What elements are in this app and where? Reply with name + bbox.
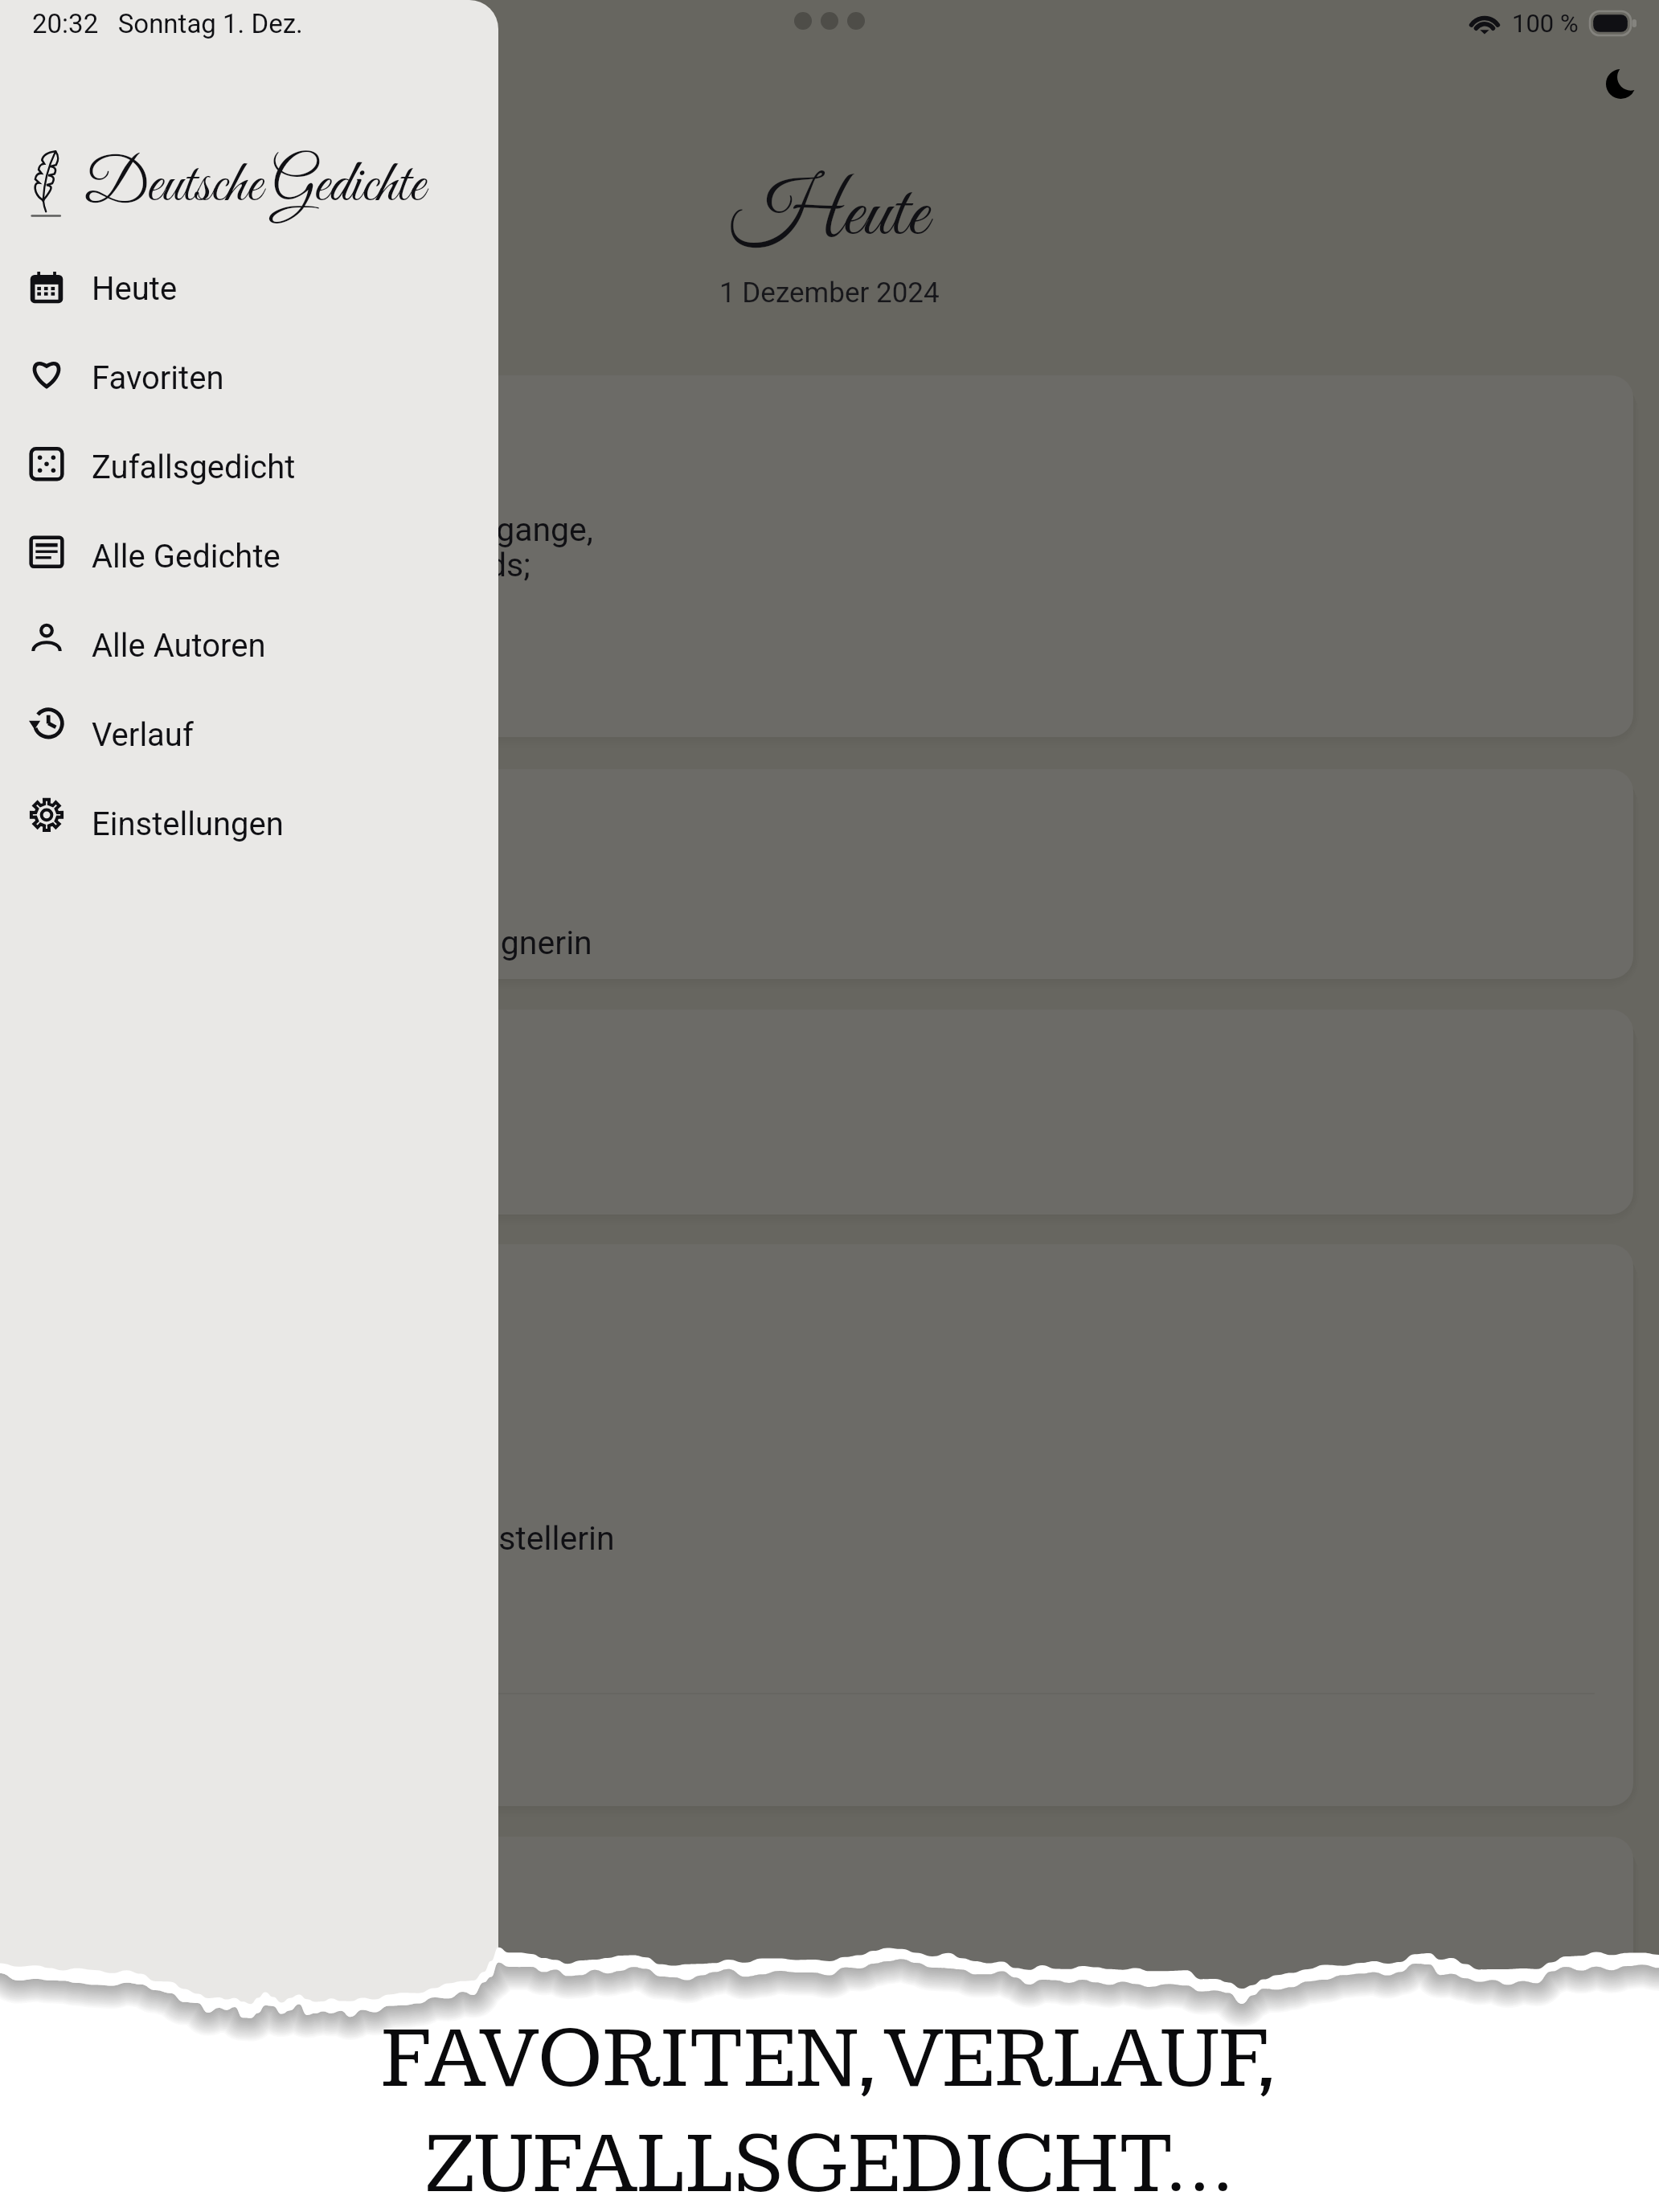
button[interactable]: Alle Gedichte: [0, 512, 498, 601]
button[interactable]: [26, 1010, 1633, 1215]
staticText: Alle Gedichte: [92, 538, 281, 576]
staticText: Alle Autoren: [92, 627, 266, 665]
button[interactable]: [26, 1244, 1633, 1806]
button[interactable]: [26, 375, 1633, 737]
button[interactable]: Zufallsgedicht: [0, 423, 498, 512]
staticText: Lyrikerin, Autorin und Schriftstellerin: [88, 1519, 615, 1558]
button[interactable]: Deutsche Gedichte: [0, 122, 498, 227]
button[interactable]: Verlauf: [0, 690, 498, 780]
staticText: Favoriten: [92, 359, 224, 397]
button[interactable]: Favoriten: [0, 334, 498, 423]
staticText: Und blüht im Glanz des Lands;: [88, 546, 530, 584]
staticText: Deutsche Gedichte: [84, 150, 425, 224]
staticText: Deutsche Dichterin und Designerin: [88, 924, 592, 962]
staticText: 100 %: [1512, 9, 1579, 38]
button[interactable]: Heute: [0, 244, 498, 334]
button[interactable]: [26, 769, 1633, 979]
button[interactable]: [26, 1837, 1633, 1993]
staticText: 20:32 Sonntag 1. Dez.: [32, 8, 303, 39]
button[interactable]: Einstellungen: [0, 780, 498, 869]
button[interactable]: Alle Autoren: [0, 601, 498, 690]
button[interactable]: Dunkelmodus umschalten: [1585, 48, 1656, 119]
staticText: 1 Dezember 2024: [719, 276, 940, 309]
staticText: FAVORITEN, VERLAUF,: [381, 2007, 1279, 2112]
staticText: Verlauf: [92, 716, 194, 754]
staticText: Zufallsgedicht: [92, 449, 296, 486]
staticText: Des Sommers Tage sind vergange,: [88, 510, 593, 549]
staticText: Einstellungen: [92, 805, 284, 843]
staticText: ZUFALLSGEDICHT...: [425, 2112, 1235, 2212]
staticText: Heute: [92, 270, 178, 308]
staticText: Heute: [731, 166, 928, 266]
